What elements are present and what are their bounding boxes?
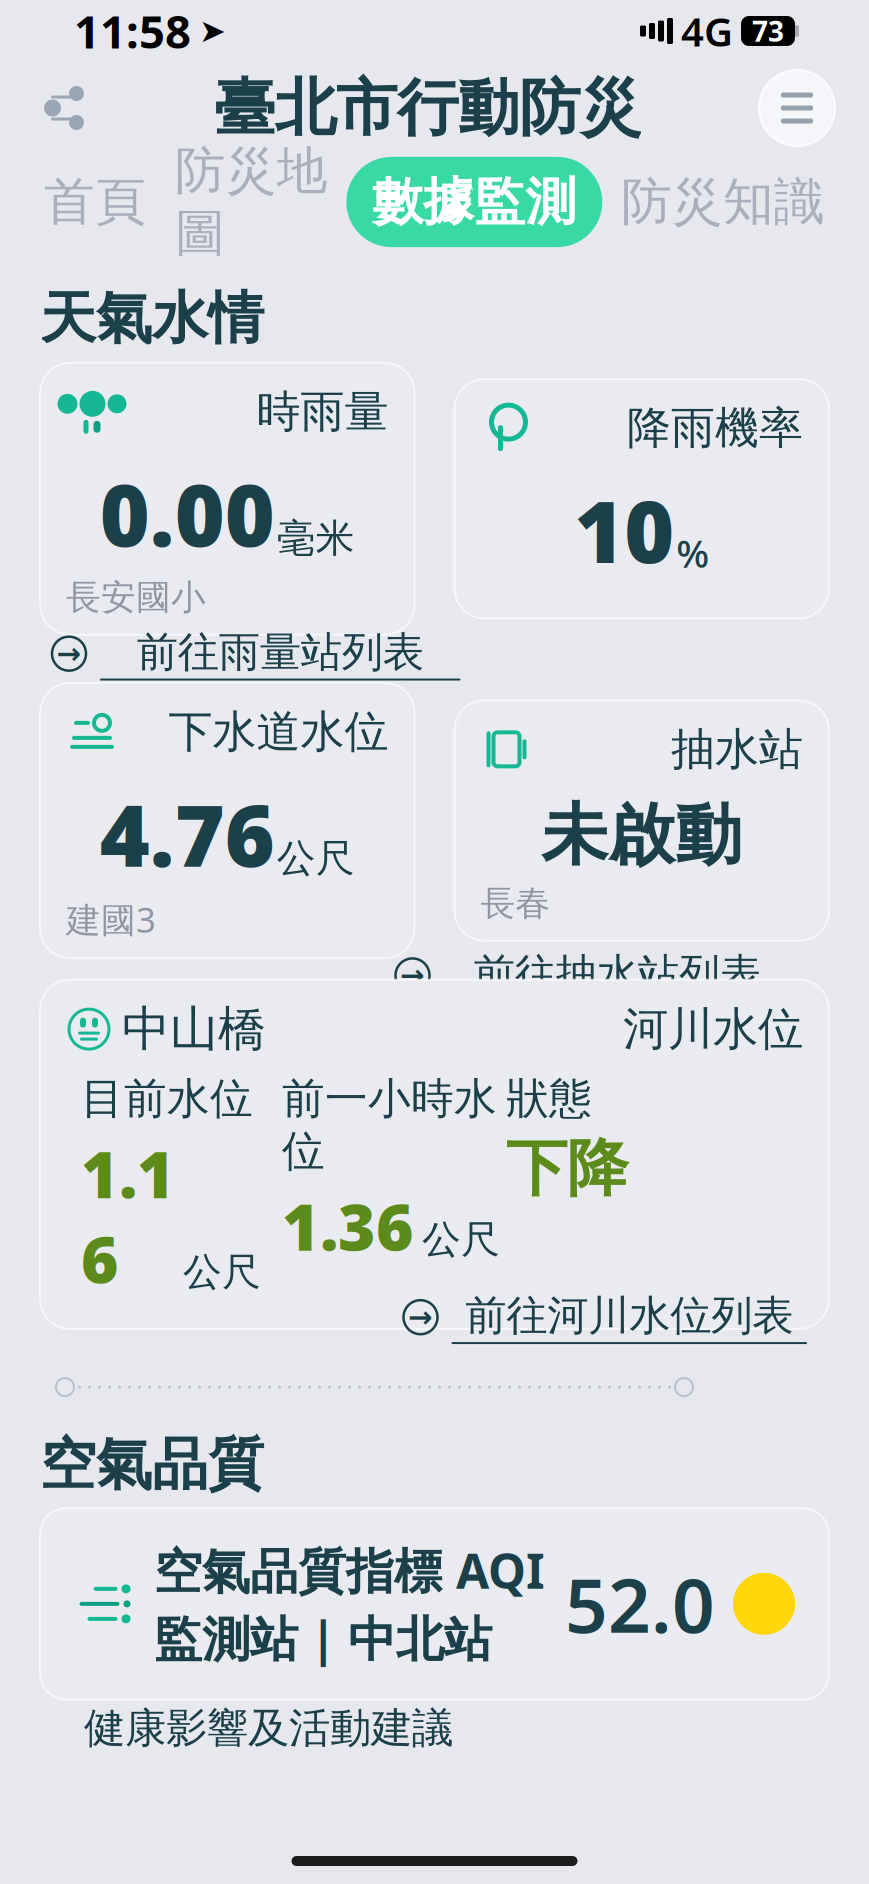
staticText: 公尺 — [277, 835, 355, 882]
staticText: 73 — [752, 12, 784, 50]
staticText: 前往雨量站列表 — [137, 627, 424, 678]
staticText: 臺北市行動防災 — [214, 70, 641, 146]
staticText: % — [676, 527, 709, 578]
staticText: → — [408, 1301, 433, 1334]
button[interactable]: 健康影響及活動建議 — [84, 1697, 453, 1760]
staticText: 降雨機率 — [627, 401, 803, 455]
staticText: 抽水站 — [671, 722, 803, 776]
staticText: ➤ — [199, 13, 226, 49]
staticText: 中山橋 — [122, 1000, 266, 1059]
staticText: 毫米 — [277, 515, 355, 562]
staticText: 監測站 | 中北站 — [154, 1606, 492, 1670]
button[interactable]: 抽水站 — [454, 700, 829, 941]
staticText: 前往抽水站列表 — [474, 949, 761, 999]
staticText: 1.36 — [282, 1183, 414, 1268]
staticText: 10 — [574, 473, 674, 586]
staticText: 河川水位 — [623, 1001, 803, 1057]
button[interactable]: 下水道水位 — [40, 683, 414, 958]
staticText: 目前水位 — [81, 1073, 253, 1125]
staticText: → — [400, 959, 425, 992]
staticText: 健康影響及活動建議 — [84, 1703, 453, 1754]
staticText: 空氣品質 — [40, 1430, 264, 1499]
staticText: 1.16 — [81, 1131, 175, 1301]
staticText: 長安國小 — [66, 576, 206, 619]
button[interactable]: 分享 — [30, 76, 100, 140]
button[interactable]: 空氣品質指標 AQI — [40, 1508, 829, 1700]
button[interactable]: 選單 — [755, 66, 839, 150]
staticText: 下降 — [506, 1131, 628, 1206]
staticText: 防災地圖 — [175, 140, 328, 264]
staticText: 11:58 — [74, 1, 191, 61]
button[interactable]: → — [403, 1286, 807, 1348]
staticText: 公尺 — [183, 1248, 261, 1296]
staticText: 數據監測 — [372, 171, 576, 233]
staticText: 空氣品質指標 AQI — [154, 1538, 545, 1602]
staticText: 公尺 — [422, 1216, 500, 1263]
staticText: 52.0 — [565, 1554, 715, 1653]
staticText: 0.00 — [100, 457, 275, 570]
staticText: 首頁 — [44, 171, 146, 233]
button[interactable]: 首頁 — [34, 157, 156, 247]
button[interactable]: 降雨機率 — [454, 379, 829, 618]
button[interactable]: 時雨量 — [40, 363, 414, 635]
staticText: 建國3 — [66, 896, 156, 942]
staticText: 時雨量 — [256, 385, 388, 439]
button[interactable]: → — [395, 945, 791, 1006]
button[interactable]: 防災知識 — [611, 157, 835, 247]
button[interactable]: → — [52, 623, 460, 685]
staticText: 狀態 — [506, 1073, 592, 1125]
staticText: 下水道水位 — [168, 705, 388, 759]
staticText: 長春 — [480, 882, 550, 925]
staticText: 天氣水情 — [40, 284, 264, 353]
staticText: 防災知識 — [621, 171, 825, 233]
button[interactable]: 數據監測 — [346, 157, 602, 247]
button[interactable]: 防災地圖 — [165, 126, 338, 278]
staticText: 前往河川水位列表 — [465, 1290, 793, 1341]
button[interactable]: 中山橋 — [40, 980, 829, 1329]
staticText: → — [56, 637, 81, 670]
staticText: 未啟動 — [541, 794, 742, 876]
staticText: 4G — [681, 4, 733, 57]
staticText: 前一小時水位 — [282, 1073, 497, 1177]
staticText: 4.76 — [100, 777, 275, 890]
